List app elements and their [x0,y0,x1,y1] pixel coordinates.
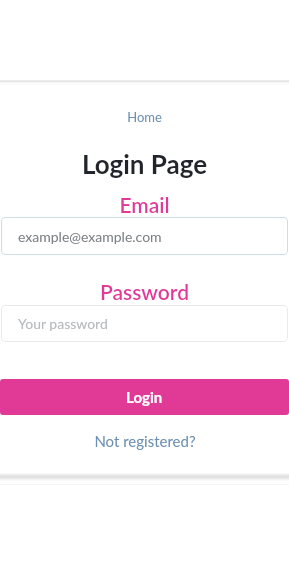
button[interactable]: Login [0,379,289,415]
staticText: Your password [18,315,108,332]
button[interactable]: Not registered? [0,430,289,452]
staticText: example@example.com [18,228,162,245]
staticText: Email [0,192,289,217]
staticText: Password [0,279,289,304]
staticText: Login Page [0,148,289,179]
button[interactable]: example@example.com [1,217,288,255]
staticText: Home [127,109,162,125]
button[interactable]: Home [0,107,289,127]
staticText: Login [126,388,163,406]
staticText: Not registered? [94,432,196,450]
button[interactable]: Your password [1,305,288,342]
